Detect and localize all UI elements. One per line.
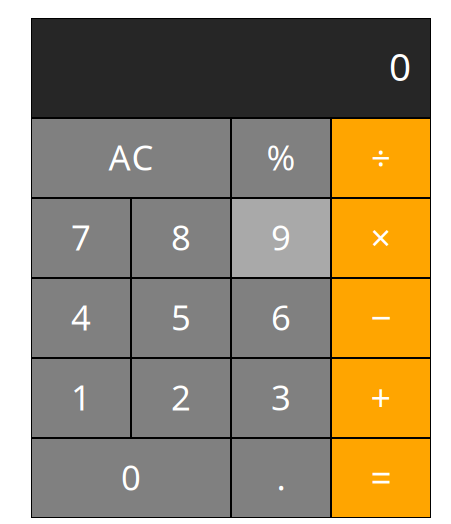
staticText: 1 [71, 374, 91, 420]
button[interactable]: 4 [31, 278, 131, 358]
button[interactable]: 5 [131, 278, 231, 358]
button[interactable]: 3 [231, 358, 331, 438]
staticText: 3 [271, 374, 291, 420]
staticText: 0 [389, 40, 411, 92]
button[interactable]: Minus [331, 278, 431, 358]
button[interactable]: Decimal point [231, 438, 331, 518]
button[interactable]: 1 [31, 358, 131, 438]
button[interactable]: 8 [131, 198, 231, 278]
button[interactable]: Divide [331, 118, 431, 198]
button[interactable]: 2 [131, 358, 231, 438]
staticText: − [370, 292, 391, 342]
button[interactable]: 6 [231, 278, 331, 358]
staticText: + [370, 373, 391, 421]
staticText: 9 [271, 214, 291, 260]
button[interactable]: Percent [231, 118, 331, 198]
staticText: AC [108, 134, 153, 180]
button[interactable]: All clear [31, 118, 231, 198]
staticText: 8 [171, 214, 191, 260]
button[interactable]: Equals [331, 438, 431, 518]
staticText: 4 [71, 294, 91, 340]
staticText: ÷ [371, 134, 391, 180]
staticText: % [266, 134, 295, 180]
staticText: 5 [171, 294, 191, 340]
staticText: = [370, 452, 391, 502]
staticText: × [370, 213, 391, 261]
staticText: 2 [171, 374, 191, 420]
button[interactable]: Multiply [331, 198, 431, 278]
button[interactable]: 9 [231, 198, 331, 278]
staticText: 0 [121, 454, 141, 500]
button[interactable]: 7 [31, 198, 131, 278]
button[interactable]: Plus [331, 358, 431, 438]
staticText: 7 [71, 214, 91, 260]
button[interactable]: 0 [31, 438, 231, 518]
staticText: 6 [271, 294, 291, 340]
staticText: . [276, 454, 285, 500]
